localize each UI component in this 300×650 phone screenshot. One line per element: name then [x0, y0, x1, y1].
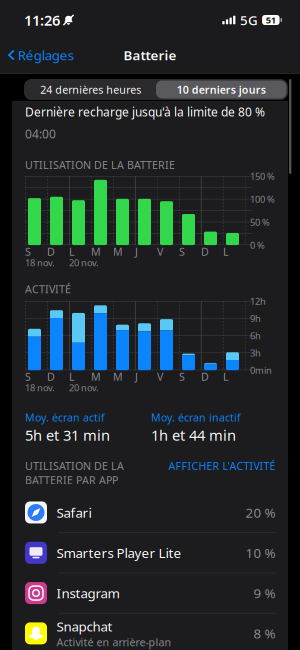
staticText: J: [135, 370, 138, 384]
staticText: D: [201, 370, 209, 384]
staticText: L: [223, 370, 229, 384]
staticText: M: [91, 244, 101, 259]
staticText: Moy. écran inactif: [151, 410, 241, 424]
staticText: UTILISATION DE LA BATTERIE: [25, 158, 175, 172]
staticText: Dernière recharge jusqu'à la limite de 8…: [25, 104, 265, 120]
staticText: 24 dernières heures: [40, 82, 141, 97]
staticText: D: [201, 244, 209, 259]
button[interactable]: Safari: [25, 493, 275, 532]
staticText: 5G: [240, 11, 258, 29]
staticText: 50 %: [250, 216, 270, 228]
staticText: V: [157, 244, 163, 259]
staticText: 10 %: [245, 544, 275, 562]
staticText: L: [69, 244, 75, 259]
staticText: 3h: [250, 347, 261, 359]
staticText: M: [91, 370, 101, 384]
button[interactable]: 24 dernières heures: [25, 80, 156, 98]
staticText: 8 %: [253, 624, 275, 642]
staticText: D: [47, 370, 55, 384]
staticText: UTILISATION DE LA BATTERIE PAR APP: [25, 459, 124, 487]
staticText: Smarters Player Lite: [56, 544, 181, 562]
staticText: 9 %: [253, 584, 275, 602]
staticText: Safari: [56, 504, 91, 521]
staticText: 100 %: [250, 193, 275, 205]
staticText: 51: [266, 14, 276, 26]
staticText: Réglages: [18, 46, 74, 64]
staticText: S: [25, 370, 31, 384]
staticText: Instagram: [56, 584, 119, 602]
staticText: S: [179, 244, 185, 259]
staticText: L: [69, 370, 75, 384]
staticText: D: [47, 244, 55, 259]
staticText: L: [223, 244, 229, 259]
staticText: M: [113, 370, 123, 384]
staticText: M: [113, 244, 123, 259]
staticText: 5h et 31 min: [25, 425, 110, 445]
staticText: 10 derniers jours: [177, 82, 266, 97]
staticText: 11:26: [24, 10, 60, 30]
button[interactable]: 10 derniers jours: [156, 80, 286, 98]
staticText: Activité en arrière-plan: [56, 635, 171, 649]
staticText: 6h: [250, 329, 261, 342]
button[interactable]: Smarters Player Lite: [25, 533, 275, 573]
staticText: 1h et 44 min: [151, 425, 236, 445]
button[interactable]: AFFICHER L'ACTIVITÉ: [168, 459, 275, 473]
staticText: Moy. écran actif: [25, 410, 105, 424]
staticText: 150 %: [250, 170, 275, 182]
staticText: Snapchat: [56, 617, 112, 635]
staticText: 04:00: [25, 126, 56, 142]
staticText: 12h: [250, 295, 266, 307]
staticText: S: [179, 370, 185, 384]
staticText: S: [25, 244, 31, 259]
staticText: V: [157, 370, 163, 384]
staticText: 20 %: [245, 504, 275, 521]
staticText: J: [135, 244, 138, 259]
staticText: 18 nov.: [25, 381, 55, 394]
staticText: 20 nov.: [69, 381, 99, 394]
button[interactable]: Instagram: [25, 573, 275, 613]
staticText: 20 nov.: [69, 256, 99, 269]
staticText: 0 %: [250, 239, 265, 251]
staticText: 18 nov.: [25, 256, 55, 269]
button[interactable]: Snapchat: [25, 614, 275, 650]
staticText: ACTIVITÉ: [25, 282, 71, 296]
staticText: AFFICHER L'ACTIVITÉ: [168, 459, 275, 473]
staticText: 9h: [250, 312, 261, 325]
button[interactable]: Réglages: [0, 43, 80, 67]
staticText: 0min: [250, 364, 272, 376]
staticText: Batterie: [123, 46, 176, 64]
